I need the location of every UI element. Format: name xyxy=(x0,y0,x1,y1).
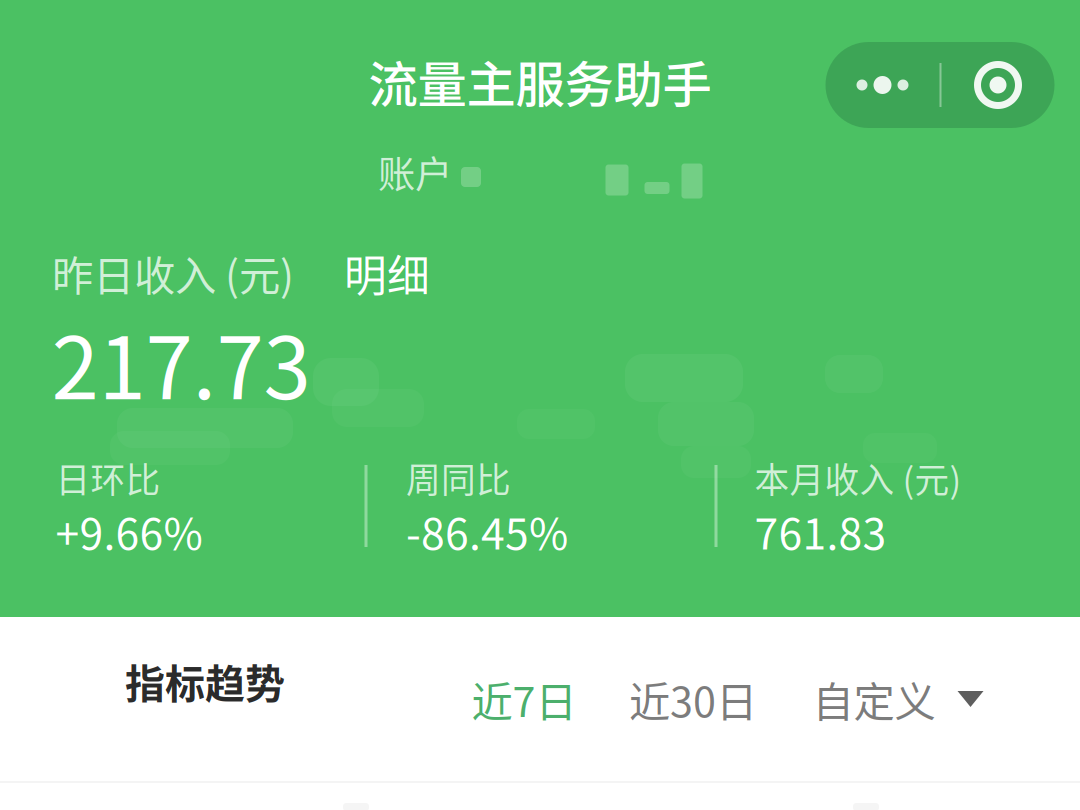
staticText: -86.45% xyxy=(406,500,568,562)
staticText: 账户 xyxy=(378,145,452,199)
staticText: 本月收入 (元) xyxy=(754,453,961,503)
button[interactable]: 明细 xyxy=(333,233,441,313)
staticText: 流量主服务助手 xyxy=(368,45,711,117)
staticText: 自定义 xyxy=(812,669,935,729)
staticText: 近7日 xyxy=(471,669,576,729)
staticText: 指标趋势 xyxy=(125,652,285,710)
button[interactable]: Close xyxy=(941,42,1054,128)
button[interactable]: More xyxy=(825,42,939,128)
staticText: 217.73 xyxy=(51,300,310,424)
button[interactable]: 自定义 xyxy=(808,651,988,747)
staticText: 明细 xyxy=(344,242,430,304)
staticText: 近30日 xyxy=(629,669,757,729)
button[interactable]: 近7日 xyxy=(458,651,590,747)
staticText: 昨日收入 (元) xyxy=(52,243,294,303)
button[interactable]: 近30日 xyxy=(613,651,773,747)
staticText: 周同比 xyxy=(406,453,511,503)
staticText: +9.66% xyxy=(55,500,202,562)
staticText: 日环比 xyxy=(55,453,160,503)
staticText: 761.83 xyxy=(754,500,886,562)
